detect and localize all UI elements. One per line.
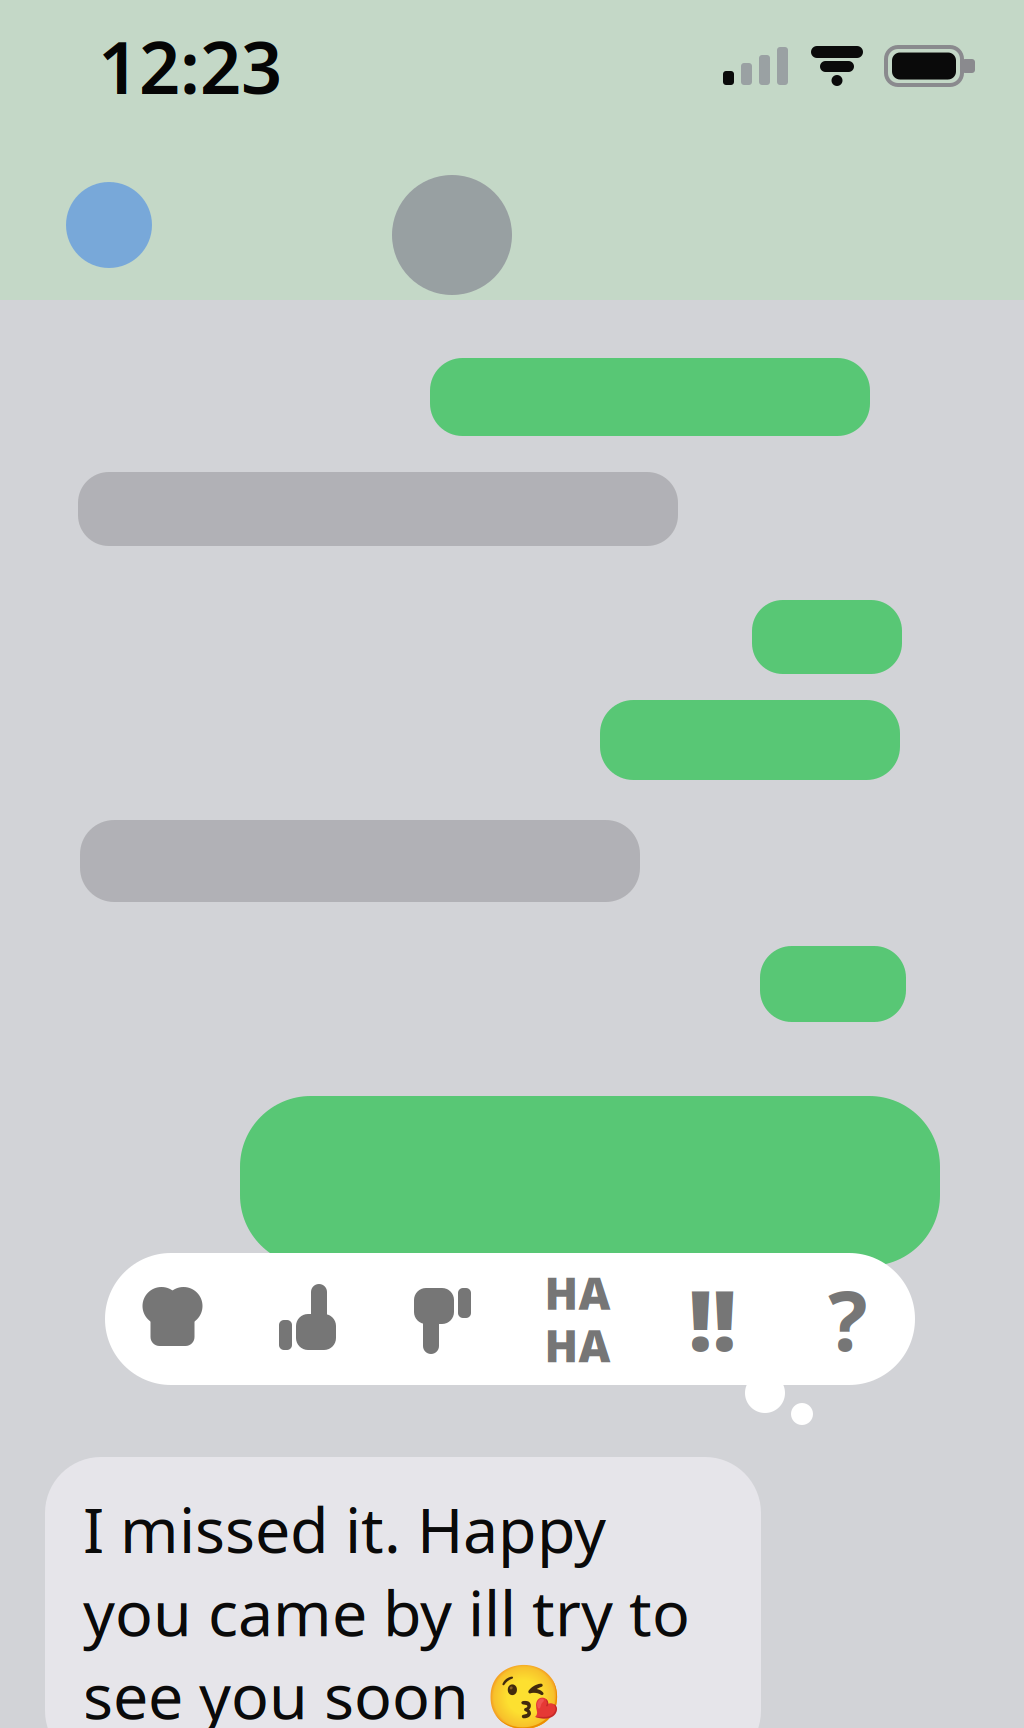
staticText: HA (544, 1264, 610, 1322)
button[interactable]: Question (780, 1253, 915, 1385)
staticText: HA (544, 1316, 610, 1374)
button[interactable]: Dislike (375, 1253, 510, 1385)
staticText: !! (688, 1264, 736, 1374)
button[interactable]: Haha (510, 1253, 645, 1385)
button[interactable]: Like (240, 1253, 375, 1385)
staticText: ? (828, 1264, 867, 1374)
button[interactable]: Exclamation (645, 1253, 780, 1385)
button[interactable]: Love (105, 1253, 240, 1385)
staticText: I missed it. Happy you came by ill try t… (83, 1487, 690, 1728)
staticText: 12:23 (98, 18, 282, 114)
